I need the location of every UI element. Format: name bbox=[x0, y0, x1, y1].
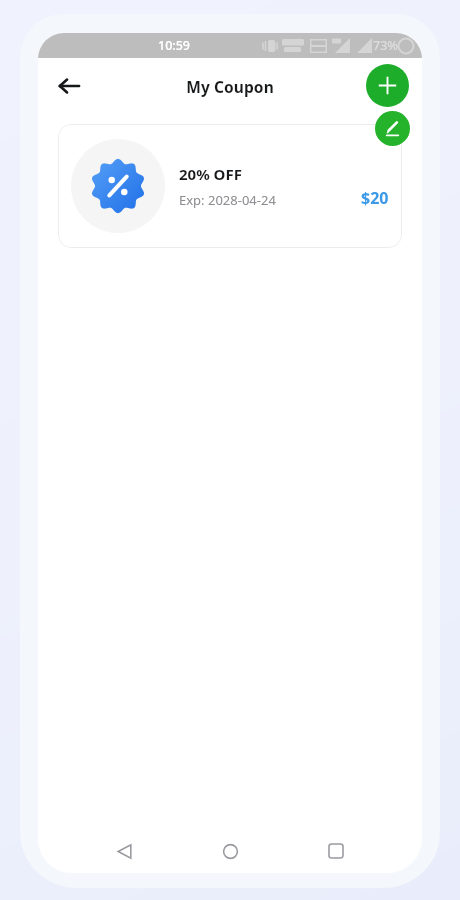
staticText: $20 bbox=[361, 187, 389, 209]
staticText: 20% OFF bbox=[179, 164, 242, 184]
button[interactable]: Back bbox=[104, 831, 144, 871]
button[interactable]: Home bbox=[210, 831, 250, 871]
staticText: My Coupon bbox=[38, 76, 422, 97]
button[interactable]: Recent apps bbox=[316, 831, 356, 871]
staticText: 73% bbox=[373, 37, 398, 54]
button[interactable]: Back bbox=[48, 65, 90, 107]
staticText: Exp: 2028-04-24 bbox=[179, 191, 276, 209]
button[interactable]: 20% OFF bbox=[58, 124, 402, 248]
button[interactable]: Add coupon bbox=[366, 64, 409, 107]
button[interactable]: Edit coupon bbox=[375, 111, 410, 146]
staticText: 10:59 bbox=[158, 37, 191, 54]
